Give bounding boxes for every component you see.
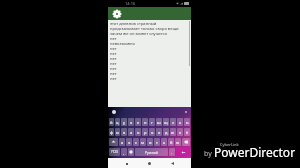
staticText: у [123, 120, 126, 125]
staticText: х [179, 120, 182, 125]
button[interactable]: е [135, 118, 141, 126]
staticText: нет [110, 56, 117, 61]
staticText: нет [110, 76, 117, 81]
staticText: зачем же он может случится [110, 31, 167, 36]
button[interactable]: о [149, 128, 155, 136]
button[interactable]: Change language [128, 148, 134, 156]
button[interactable]: в [121, 128, 127, 136]
staticText: ?123 [111, 150, 118, 154]
staticText: ъ [186, 120, 189, 125]
button[interactable]: и [147, 138, 153, 146]
staticText: д [165, 130, 168, 135]
staticText: п [137, 130, 140, 135]
button[interactable]: н [142, 118, 148, 126]
button[interactable]: Русский [135, 148, 168, 156]
staticText: р [144, 130, 147, 135]
button[interactable]: т [154, 138, 160, 146]
staticText: л [158, 130, 161, 135]
button[interactable]: д [163, 128, 169, 136]
button[interactable]: л [156, 128, 162, 136]
staticText: невозможно [110, 41, 135, 46]
staticText: нет [110, 46, 117, 51]
button[interactable]: х [177, 118, 183, 126]
staticText: к [130, 120, 133, 125]
staticText: й [110, 120, 113, 125]
staticText: ф [110, 130, 113, 135]
button[interactable]: э [177, 128, 183, 136]
staticText: щ [164, 120, 168, 125]
staticText: нет [110, 61, 117, 66]
staticText: и [149, 140, 152, 145]
staticText: а [130, 130, 133, 135]
button[interactable]: я [119, 138, 125, 146]
button[interactable]: Home [145, 159, 154, 168]
staticText: Русский [145, 150, 158, 155]
button[interactable]: с [133, 138, 139, 146]
staticText: PowerDirector [214, 144, 296, 160]
button[interactable]: а [128, 128, 134, 136]
button[interactable]: м [140, 138, 146, 146]
button[interactable]: у [121, 118, 127, 126]
button[interactable]: ь [161, 138, 167, 146]
button[interactable]: щ [163, 118, 169, 126]
button[interactable]: Shift [109, 138, 118, 146]
button[interactable]: ц [115, 118, 120, 126]
staticText: н [144, 120, 147, 125]
staticText: нет [110, 71, 117, 76]
button[interactable]: Back [168, 159, 177, 168]
button[interactable]: й [109, 118, 114, 126]
button[interactable]: ё [184, 128, 190, 136]
staticText: с [135, 140, 137, 145]
button[interactable]: ч [126, 138, 132, 146]
button[interactable]: з [170, 118, 176, 126]
button[interactable]: п [135, 128, 141, 136]
staticText: нет [110, 51, 117, 56]
staticText: ч [128, 140, 131, 145]
staticText: ж [171, 130, 175, 135]
staticText: е [137, 120, 140, 125]
staticText: э [179, 130, 181, 135]
staticText: ш [157, 120, 161, 125]
button[interactable]: к [128, 118, 134, 126]
staticText: этот дневник странный [110, 21, 157, 26]
staticText: нет [110, 36, 117, 41]
staticText: 14:16 [125, 1, 136, 6]
staticText: о [151, 130, 154, 135]
staticText: , [123, 150, 125, 155]
button[interactable]: ?123 [109, 148, 120, 156]
staticText: в [123, 130, 126, 135]
button[interactable]: г [149, 118, 155, 126]
button[interactable]: ф [109, 128, 114, 136]
staticText: ь [163, 140, 166, 145]
button[interactable]: ш [156, 118, 162, 126]
staticText: нет [110, 66, 117, 71]
button[interactable]: Enter [176, 148, 190, 156]
staticText: я [121, 140, 124, 145]
button[interactable]: ъ [184, 118, 190, 126]
button[interactable]: Backspace [182, 138, 190, 146]
button[interactable]: ы [115, 128, 120, 136]
button[interactable]: . [169, 148, 175, 156]
button[interactable]: Settings [112, 9, 122, 19]
button[interactable]: , [121, 148, 127, 156]
staticText: ы [116, 130, 120, 135]
staticText: . [171, 150, 173, 155]
button[interactable]: ю [175, 138, 181, 146]
staticText: предсказывает только скоро вещи [110, 26, 179, 31]
staticText: т [156, 140, 158, 145]
staticText: ц [116, 120, 119, 125]
button[interactable]: More options [184, 110, 188, 114]
button[interactable]: Emoji [112, 110, 116, 114]
staticText: CyberLink [220, 142, 239, 147]
staticText: б [170, 140, 173, 145]
button[interactable]: р [142, 128, 148, 136]
button[interactable]: Recents [122, 159, 131, 168]
staticText: by [204, 149, 214, 159]
button[interactable]: б [168, 138, 174, 146]
staticText: ю [176, 140, 180, 145]
button[interactable]: ж [170, 128, 176, 136]
staticText: з [172, 120, 174, 125]
staticText: м [141, 140, 145, 145]
staticText: г [151, 120, 153, 125]
staticText: ё [186, 130, 189, 135]
